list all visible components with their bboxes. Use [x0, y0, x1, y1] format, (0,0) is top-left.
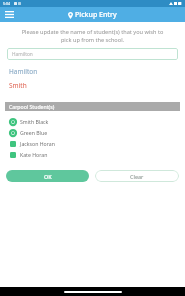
staticText: Clear: [130, 173, 144, 180]
staticText: Green Blue: [20, 129, 48, 136]
staticText: Smith Black: [20, 118, 49, 125]
staticText: Hamilton: [9, 67, 38, 76]
button[interactable]: Clear: [95, 170, 179, 182]
button[interactable]: Hamilton: [7, 48, 178, 60]
staticText: Please update the name of student(s) tha…: [16, 28, 169, 44]
button[interactable]: Smith Black: [0, 116, 185, 127]
staticText: Jackson Horan: [20, 140, 55, 147]
staticText: Kate Horan: [20, 151, 48, 158]
staticText: 5:04: [3, 1, 11, 6]
button[interactable]: Open navigation menu: [3, 8, 16, 21]
staticText: Hamilton: [12, 51, 33, 58]
button[interactable]: OK: [6, 170, 89, 182]
staticText: Pickup Entry: [75, 10, 117, 20]
staticText: Smith: [9, 81, 27, 90]
button[interactable]: Kate Horan: [0, 149, 185, 160]
staticText: Carpool Student(s): [9, 103, 55, 110]
button[interactable]: Jackson Horan: [0, 138, 185, 149]
button[interactable]: Green Blue: [0, 127, 185, 138]
staticText: OK: [44, 173, 52, 180]
